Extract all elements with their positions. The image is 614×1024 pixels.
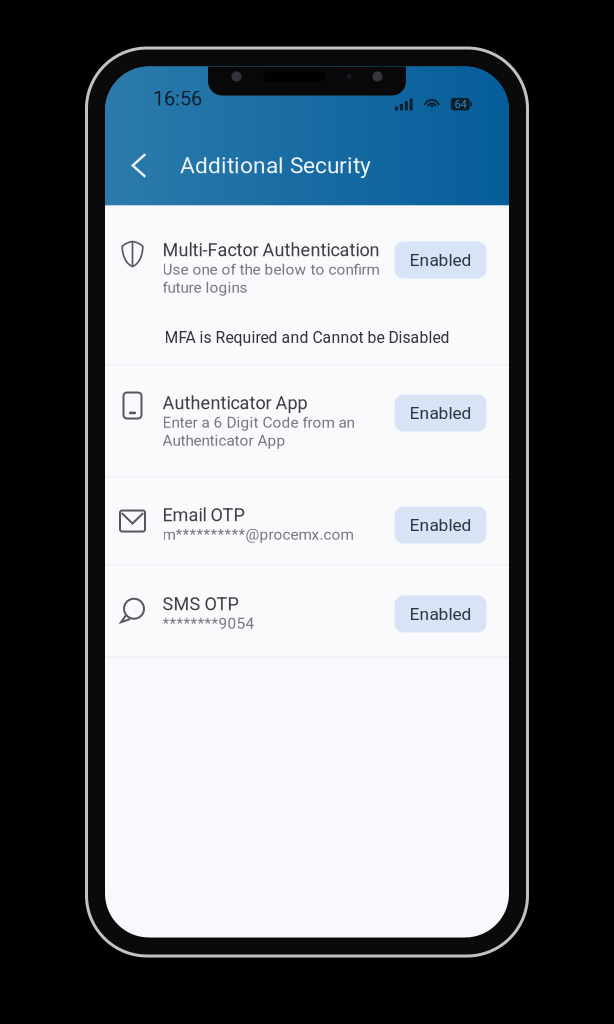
button[interactable]: SMS OTP [105, 565, 509, 656]
staticText: SMS OTP [162, 593, 238, 615]
staticText: Use one of the below to confirm future l… [162, 261, 379, 296]
button[interactable]: Email OTP [105, 477, 509, 564]
staticText: Authenticator App [162, 392, 307, 414]
staticText: m**********@procemx.com [162, 526, 353, 544]
staticText: Enabled [409, 604, 471, 624]
staticText: Enabled [409, 515, 471, 535]
staticText: MFA is Required and Cannot be Disabled [164, 328, 449, 347]
button[interactable]: Multi-Factor Authentication [105, 205, 509, 309]
staticText: Multi-Factor Authentication [162, 239, 379, 261]
staticText: Enabled [409, 250, 471, 270]
staticText: 64 [454, 98, 466, 111]
button[interactable]: Authenticator App [105, 365, 509, 476]
staticText: ********9054 [162, 615, 254, 633]
staticText: Enabled [409, 403, 471, 423]
button[interactable]: Back [119, 142, 159, 188]
staticText: Additional Security [180, 152, 371, 179]
staticText: Email OTP [162, 504, 244, 526]
staticText: Enter a 6 Digit Code from an Authenticat… [162, 414, 354, 449]
staticText: 16:56 [153, 87, 202, 110]
